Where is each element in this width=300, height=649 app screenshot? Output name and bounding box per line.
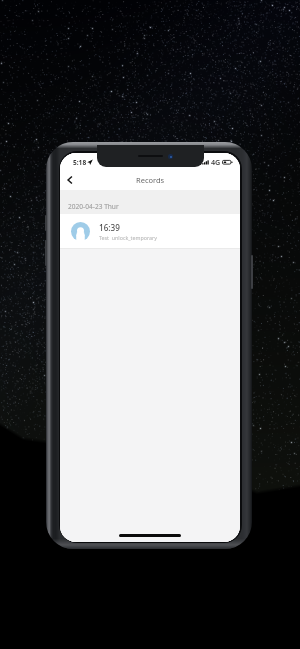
button[interactable]: 16:39 (60, 214, 240, 248)
staticText: 2020-04-23 Thur (68, 202, 119, 211)
staticText: Test unlock_temporary (99, 234, 157, 241)
staticText: 16:39 (99, 222, 120, 233)
staticText: 4G (211, 157, 221, 167)
staticText: 5:18 (73, 158, 87, 167)
staticText: Records (136, 175, 165, 185)
button[interactable]: Back (60, 170, 80, 190)
